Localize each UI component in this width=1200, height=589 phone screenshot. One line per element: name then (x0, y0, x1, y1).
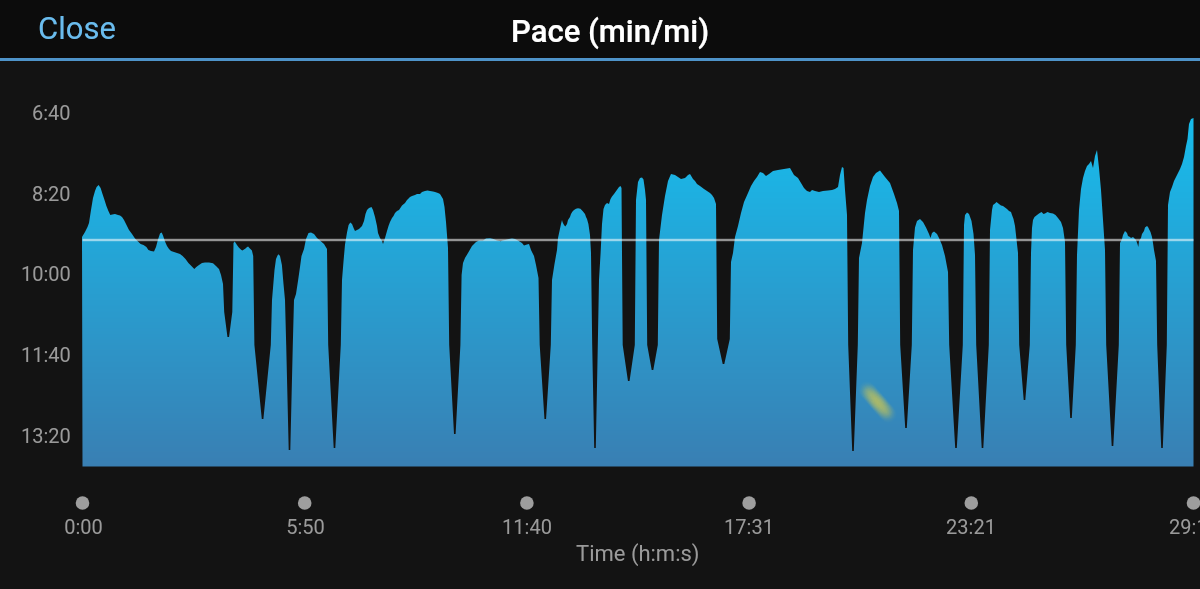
staticText: 23:21 (946, 515, 996, 538)
staticText: 11:40 (21, 343, 71, 366)
staticText: 17:31 (724, 515, 774, 538)
button[interactable]: Close (0, 2, 140, 54)
staticText: 0:00 (64, 515, 103, 538)
staticText: 6:40 (32, 101, 71, 124)
staticText: 5:50 (286, 515, 325, 538)
staticText: 13:20 (21, 424, 71, 447)
staticText: 29:11 (1169, 515, 1200, 538)
staticText: 11:40 (502, 515, 552, 538)
other: Pace over time chart (0, 0, 1200, 589)
staticText: Time (h:m:s) (576, 541, 700, 567)
staticText: Pace (min/mi) (511, 13, 710, 49)
staticText: 10:00 (21, 262, 71, 285)
staticText: Close (38, 10, 116, 46)
staticText: 8:20 (32, 182, 71, 205)
